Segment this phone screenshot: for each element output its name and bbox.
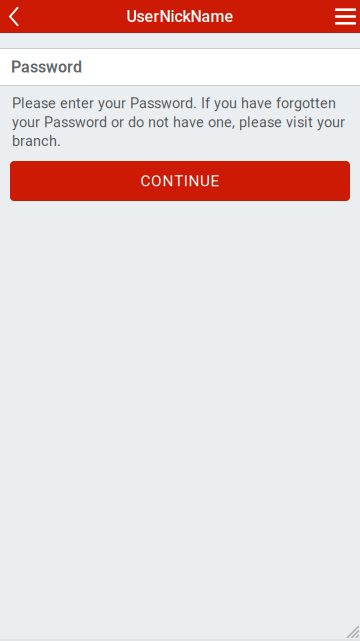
button[interactable]: CONTINUE — [10, 161, 350, 201]
staticText: UserNickName — [126, 7, 233, 26]
staticText: Password — [11, 58, 82, 76]
button[interactable]: Menu — [323, 0, 360, 33]
staticText: CONTINUE — [140, 172, 220, 190]
staticText: Please enter your Password. If you have … — [12, 95, 345, 150]
button[interactable]: Back — [0, 0, 31, 33]
